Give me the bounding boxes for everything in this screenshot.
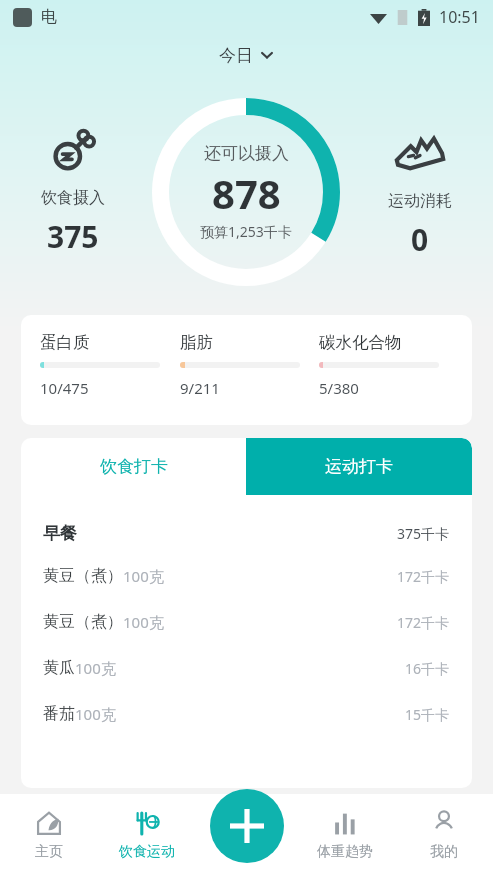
staticText: 100克 (75, 704, 116, 724)
staticText: 饮食打卡 (100, 456, 168, 477)
staticText: 电 (41, 7, 57, 27)
staticText: 100克 (75, 658, 116, 678)
button[interactable]: 黄豆（煮） (43, 599, 450, 645)
staticText: 主页 (35, 843, 63, 861)
staticText: 15千卡 (405, 705, 450, 724)
button[interactable]: Exercise burn (346, 123, 493, 260)
button[interactable]: 黄瓜 (43, 645, 450, 691)
staticText: 16千卡 (405, 659, 450, 678)
button[interactable]: 蛋白质 (40, 332, 180, 398)
staticText: 早餐 (43, 523, 77, 544)
staticText: 375 (47, 216, 99, 257)
staticText: 5/380 (319, 378, 359, 398)
staticText: 我的 (430, 843, 458, 861)
staticText: 番茄 (43, 704, 75, 724)
staticText: 黄豆（煮） (43, 566, 123, 586)
button[interactable]: Diet intake (0, 126, 146, 257)
button[interactable]: 番茄 (43, 691, 450, 737)
staticText: 黄豆（煮） (43, 612, 123, 632)
staticText: 黄瓜 (43, 658, 75, 678)
button[interactable]: Calories remaining 878 (152, 98, 340, 286)
staticText: 100克 (123, 612, 164, 632)
button[interactable]: 蛋白质 (21, 315, 472, 425)
staticText: 10/475 (40, 378, 89, 398)
staticText: 878 (212, 166, 281, 220)
staticText: 10:51 (439, 6, 480, 28)
button[interactable]: 黄豆（煮） (43, 553, 450, 599)
button[interactable]: 主页 (0, 794, 98, 876)
button[interactable]: 我的 (394, 794, 493, 876)
staticText: 172千卡 (397, 613, 450, 632)
staticText: 还可以摄入 (204, 143, 289, 164)
staticText: 100克 (123, 566, 164, 586)
button[interactable]: 体重趋势 (295, 794, 394, 876)
staticText: 0 (411, 219, 429, 260)
staticText: 172千卡 (397, 567, 450, 586)
button[interactable]: 运动打卡 (246, 438, 472, 495)
staticText: 9/211 (180, 378, 220, 398)
staticText: 碳水化合物 (319, 332, 402, 353)
staticText: 运动打卡 (325, 456, 393, 477)
button[interactable]: 脂肪 (180, 332, 319, 398)
staticText: 蛋白质 (40, 332, 90, 353)
button[interactable]: 饮食运动 (98, 794, 196, 876)
button[interactable]: 碳水化合物 (319, 332, 458, 398)
button[interactable]: 早餐 (43, 513, 450, 553)
staticText: 运动消耗 (388, 191, 452, 211)
button[interactable]: Add record (210, 789, 284, 863)
staticText: 饮食摄入 (41, 188, 105, 208)
staticText: 预算1,253千卡 (200, 222, 292, 241)
staticText: 饮食运动 (119, 843, 175, 861)
staticText: 体重趋势 (317, 843, 373, 861)
staticText: 脂肪 (180, 332, 213, 353)
staticText: 375千卡 (397, 524, 450, 543)
staticText: 今日 (219, 45, 253, 66)
button[interactable]: 饮食打卡 (21, 438, 246, 495)
button[interactable]: 今日 (0, 34, 493, 76)
